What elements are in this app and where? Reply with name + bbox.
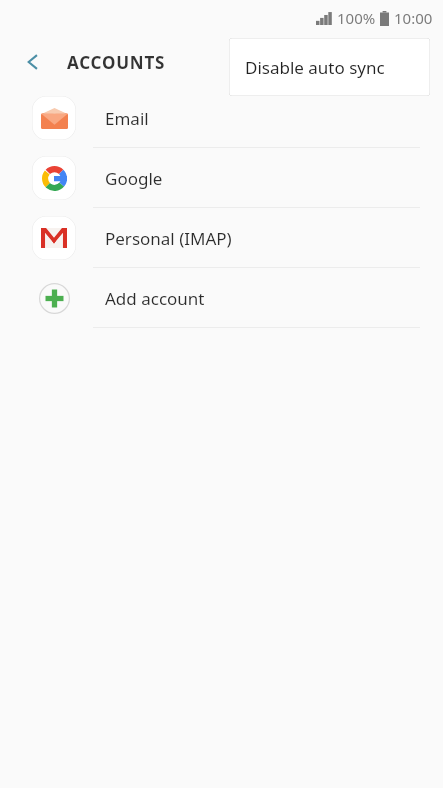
button[interactable]: Disable auto sync	[229, 38, 430, 96]
staticText: Email	[105, 107, 149, 130]
staticText: Personal (IMAP)	[105, 227, 232, 250]
button[interactable]: Personal (IMAP)	[0, 208, 443, 268]
button[interactable]: Add account	[0, 268, 443, 328]
staticText: 100%	[337, 8, 376, 28]
staticText: Google	[105, 167, 163, 190]
staticText: 10:00	[394, 8, 433, 28]
staticText: Disable auto sync	[245, 56, 385, 79]
staticText: ACCOUNTS	[67, 51, 166, 74]
staticText: Add account	[105, 287, 205, 310]
button[interactable]: Google	[0, 148, 443, 208]
button[interactable]: Navigate up	[9, 38, 57, 86]
button[interactable]: Email	[0, 88, 443, 148]
